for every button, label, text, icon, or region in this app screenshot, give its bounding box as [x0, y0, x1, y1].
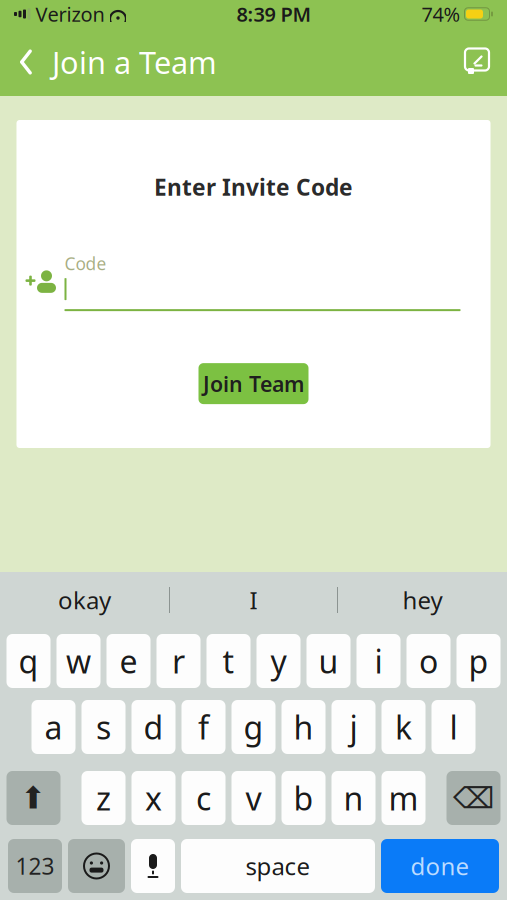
staticText: space — [245, 850, 310, 882]
staticText: Code — [64, 252, 106, 275]
button[interactable]: Emoji — [68, 839, 125, 893]
staticText: x — [145, 777, 162, 819]
staticText: ⬆ — [20, 781, 46, 815]
staticText: b — [293, 777, 313, 819]
button[interactable]: p — [456, 634, 500, 688]
staticText: j — [349, 706, 357, 748]
button[interactable]: y — [256, 634, 300, 688]
staticText: ⌫ — [453, 781, 494, 815]
staticText: m — [388, 777, 418, 819]
staticText: r — [172, 640, 185, 682]
button[interactable]: c — [181, 771, 225, 825]
button[interactable]: Messages — [447, 32, 507, 92]
button[interactable]: r — [156, 634, 200, 688]
staticText: v — [245, 777, 261, 819]
staticText: y — [270, 640, 286, 682]
button[interactable]: n — [331, 771, 375, 825]
staticText: g — [243, 706, 263, 748]
staticText: Join a Team — [52, 42, 217, 82]
staticText: e — [119, 640, 137, 682]
staticText: done — [410, 850, 469, 882]
staticText: n — [343, 777, 363, 819]
button[interactable]: k — [381, 700, 425, 754]
button[interactable]: f — [181, 700, 225, 754]
staticText: h — [293, 706, 313, 748]
staticText: w — [66, 640, 91, 682]
button[interactable]: Back — [0, 32, 52, 92]
staticText: i — [374, 640, 382, 682]
staticText: 8:39 PM — [236, 1, 311, 27]
button[interactable]: Shift — [6, 771, 60, 825]
button[interactable]: j — [331, 700, 375, 754]
button[interactable]: b — [281, 771, 325, 825]
button[interactable]: e — [106, 634, 150, 688]
button[interactable]: v — [231, 771, 275, 825]
button[interactable]: x — [131, 771, 175, 825]
button[interactable]: m — [381, 771, 425, 825]
staticText: l — [449, 706, 457, 748]
staticText: Join Team — [203, 369, 304, 398]
button[interactable]: I — [170, 572, 337, 628]
staticText: 74% — [421, 1, 460, 27]
staticText: I — [249, 584, 257, 616]
button[interactable]: done — [381, 839, 499, 893]
button[interactable]: u — [306, 634, 350, 688]
button[interactable]: s — [81, 700, 125, 754]
button[interactable]: o — [406, 634, 450, 688]
staticText: a — [44, 706, 62, 748]
staticText: z — [96, 777, 111, 819]
button[interactable]: space — [181, 839, 375, 893]
button[interactable]: w — [56, 634, 100, 688]
staticText: f — [198, 706, 209, 748]
button[interactable]: a — [31, 700, 75, 754]
staticText: p — [468, 640, 488, 682]
button[interactable]: g — [231, 700, 275, 754]
button[interactable]: l — [431, 700, 475, 754]
staticText: o — [419, 640, 438, 682]
staticText: u — [318, 640, 338, 682]
staticText: 123 — [15, 851, 54, 881]
staticText: t — [222, 640, 234, 682]
button[interactable]: i — [356, 634, 400, 688]
button[interactable]: q — [6, 634, 50, 688]
button[interactable]: Join Team — [198, 363, 308, 404]
button[interactable]: z — [81, 771, 125, 825]
staticText: Verizon — [35, 1, 104, 27]
button[interactable]: t — [206, 634, 250, 688]
staticText: okay — [58, 584, 111, 616]
button[interactable]: Delete — [446, 771, 500, 825]
button[interactable]: Dictate — [131, 839, 175, 893]
button[interactable]: okay — [0, 572, 169, 628]
staticText: d — [143, 706, 163, 748]
button[interactable]: d — [131, 700, 175, 754]
staticText: hey — [402, 584, 442, 616]
button[interactable]: h — [281, 700, 325, 754]
staticText: Enter Invite Code — [154, 172, 353, 202]
staticText: s — [96, 706, 111, 748]
staticText: q — [18, 640, 38, 682]
staticText: c — [196, 777, 211, 819]
button[interactable]: 123 — [8, 839, 62, 893]
button[interactable]: hey — [338, 572, 507, 628]
staticText: k — [395, 706, 412, 748]
